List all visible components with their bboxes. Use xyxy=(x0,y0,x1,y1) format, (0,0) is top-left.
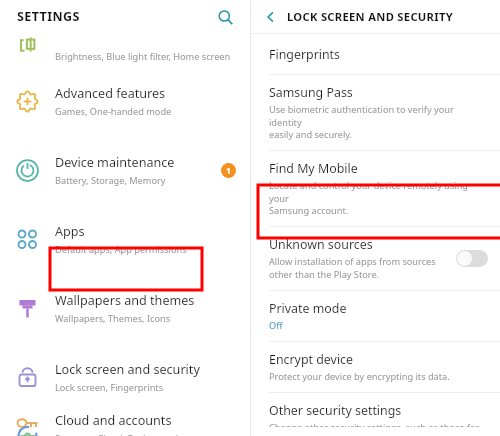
staticText: Brightness, Blue light filter, Home scre… xyxy=(55,50,231,63)
staticText: Wallpapers, Themes, Icons xyxy=(55,312,171,325)
button[interactable]: Other security settings xyxy=(251,393,500,436)
staticText: Allow installation of apps from sources … xyxy=(269,255,436,281)
button[interactable]: Search xyxy=(214,6,236,28)
staticText: Advanced features xyxy=(55,85,166,102)
staticText: Apps xyxy=(55,223,85,240)
staticText: Fingerprints xyxy=(269,46,341,63)
button[interactable]: Apps xyxy=(0,205,250,274)
staticText: Wallpapers and themes xyxy=(55,292,195,309)
button[interactable]: Cloud and accounts xyxy=(0,412,250,436)
staticText: 1 xyxy=(226,165,231,177)
staticText: LOCK SCREEN AND SECURITY xyxy=(287,9,453,24)
staticText: Default apps, App permissions xyxy=(55,243,187,256)
staticText: Find My Mobile xyxy=(269,160,358,177)
button[interactable]: Samsung Pass xyxy=(251,75,500,150)
button[interactable]: Advanced features xyxy=(0,67,250,136)
staticText: Locate and control your device remotely … xyxy=(269,179,488,217)
button[interactable]: Encrypt device xyxy=(251,342,500,392)
staticText: Samsung Cloud, Backup and restore xyxy=(55,432,212,436)
button[interactable]: Fingerprints xyxy=(251,34,500,74)
button[interactable]: Device maintenance xyxy=(0,136,250,205)
button[interactable]: Wallpapers and themes xyxy=(0,274,250,343)
staticText: Private mode xyxy=(269,300,347,317)
staticText: Cloud and accounts xyxy=(55,412,172,429)
staticText: Other security settings xyxy=(269,402,402,419)
button[interactable]: Back xyxy=(259,5,283,29)
button[interactable]: Unknown sources toggle, off xyxy=(456,250,488,267)
staticText: Games, One-handed mode xyxy=(55,105,172,118)
staticText: Lock screen and security xyxy=(55,361,200,378)
button[interactable]: Unknown sources xyxy=(251,227,500,290)
staticText: Use biometric authentication to verify y… xyxy=(269,103,488,141)
staticText: Device maintenance xyxy=(55,154,175,171)
button[interactable]: Lock screen and security xyxy=(0,343,250,412)
staticText: Samsung Pass xyxy=(269,84,353,101)
staticText: Encrypt device xyxy=(269,351,354,368)
button[interactable]: Brightness, Blue light filter, Home scre… xyxy=(0,33,250,67)
staticText: SETTINGS xyxy=(17,8,80,25)
button[interactable]: Find My Mobile xyxy=(251,151,500,226)
staticText: Change other security settings, such as … xyxy=(269,421,480,427)
staticText: Battery, Storage, Memory xyxy=(55,174,166,187)
button[interactable]: Private mode xyxy=(251,291,500,341)
staticText: Unknown sources xyxy=(269,236,373,253)
staticText: Lock screen, Fingerprints xyxy=(55,381,164,394)
staticText: Protect your device by encrypting its da… xyxy=(269,370,450,383)
staticText: Off xyxy=(269,319,283,332)
